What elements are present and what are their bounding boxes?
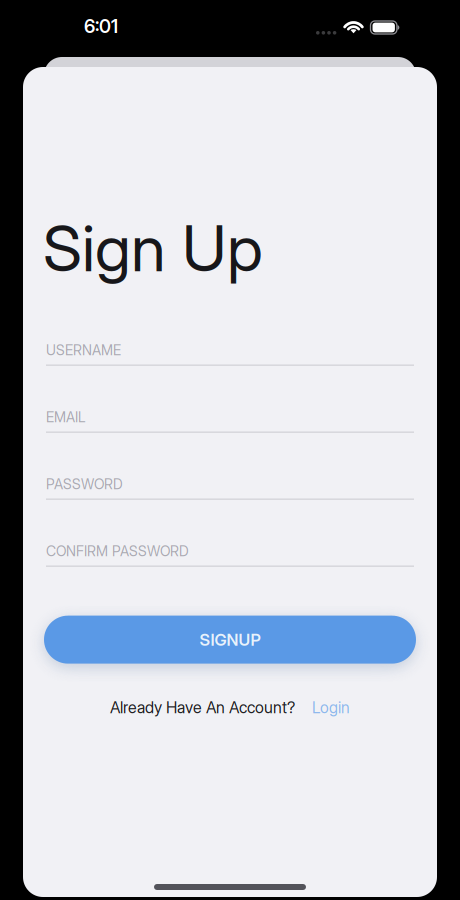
button[interactable]: SIGNUP — [44, 616, 416, 664]
staticText: EMAIL — [46, 409, 85, 425]
staticText: CONFIRM PASSWORD — [46, 543, 189, 559]
staticText: SIGNUP — [199, 630, 260, 650]
staticText: 6:01 — [84, 15, 118, 38]
staticText: Login — [312, 698, 350, 717]
staticText: Sign Up — [43, 210, 263, 287]
staticText: USERNAME — [46, 342, 121, 358]
button[interactable]: Login — [312, 698, 350, 717]
staticText: Already Have An Account? — [110, 698, 295, 717]
staticText: PASSWORD — [46, 476, 123, 492]
